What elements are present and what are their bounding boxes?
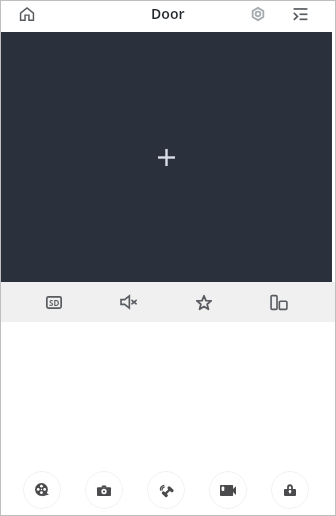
button[interactable]: Door [151,4,185,23]
button[interactable]: Clips [11,471,73,509]
button[interactable]: Settings [245,1,270,26]
button[interactable]: Cast [241,282,316,322]
button[interactable]: Favorite [166,282,241,322]
staticText: Door [151,4,185,23]
button[interactable]: Home [14,1,39,26]
button[interactable]: SD quality [17,282,91,322]
button[interactable]: Mute [91,282,166,322]
button[interactable]: Talk [135,471,197,509]
button[interactable]: Record [197,471,259,509]
button[interactable]: Lock [259,471,321,509]
staticText: SD [49,297,60,308]
button[interactable]: Snapshot [73,471,135,509]
button[interactable]: Events [287,1,312,26]
